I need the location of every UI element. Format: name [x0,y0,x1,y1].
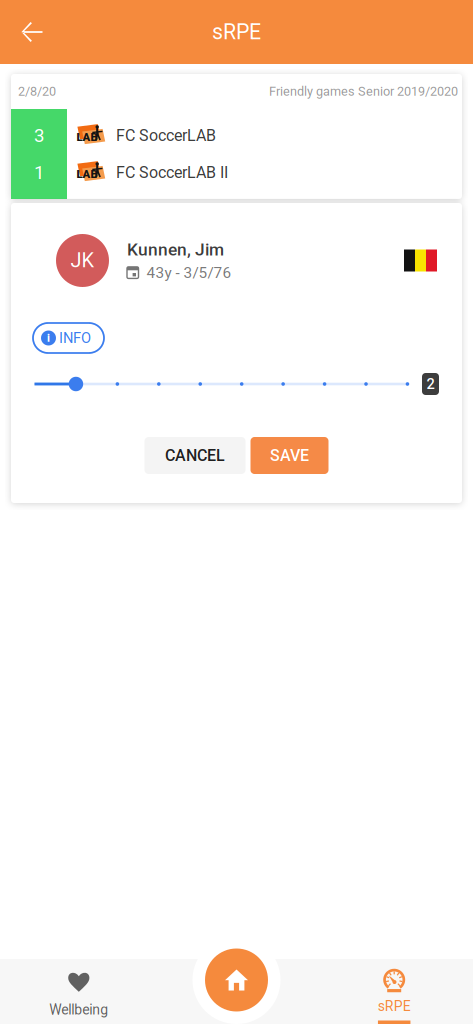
staticText: FC SoccerLAB [116,126,216,145]
staticText: FC SoccerLAB II [116,163,228,182]
staticText: 2 [426,375,434,393]
staticText: SAVE [270,446,309,465]
staticText: Friendly games Senior 2019/2020 [269,84,458,99]
staticText: 2/8/20 [18,84,56,99]
button[interactable]: SAVE [250,437,328,474]
staticText: CANCEL [165,446,225,465]
staticText: INFO [59,329,91,347]
staticText: i [47,332,50,344]
staticText: 3 [34,125,44,146]
staticText: JK [70,249,94,272]
button[interactable]: CANCEL [144,437,245,474]
button[interactable]: i [33,323,104,353]
staticText: sRPE [212,19,261,44]
staticText: Wellbeing [49,1002,108,1018]
staticText: Kunnen, Jim [127,239,224,260]
button[interactable]: Back [0,0,64,64]
button[interactable]: Home [205,948,268,1011]
button[interactable]: sRPE [315,959,473,1024]
staticText: LAB [76,130,97,144]
button[interactable]: Wellbeing [0,959,158,1024]
staticText: 43y - 3/5/76 [146,264,231,282]
staticText: sRPE [378,998,411,1014]
staticText: LAB [76,167,97,181]
staticText: 1 [34,162,44,183]
